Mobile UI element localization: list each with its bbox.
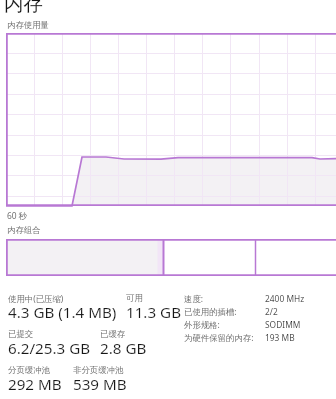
staticText: 使用中(已压缩): [8, 293, 64, 304]
staticText: 60 秒: [7, 210, 28, 221]
staticText: 已提交: [8, 329, 34, 340]
staticText: 非分页缓冲池: [73, 365, 124, 376]
staticText: 内存组合: [7, 225, 41, 236]
staticText: 分页缓冲池: [8, 365, 50, 376]
staticText: 292 MB: [8, 374, 62, 395]
staticText: 193 MB: [265, 332, 295, 343]
staticText: 539 MB: [73, 374, 127, 395]
staticText: 速度:: [184, 293, 204, 304]
staticText: 6.2/25.3 GB: [8, 338, 91, 359]
staticText: 2400 MHz: [265, 293, 305, 304]
staticText: 可用: [126, 293, 143, 304]
button[interactable]: 内存组合: [6, 239, 336, 276]
staticText: 已使用的插槽:: [184, 306, 237, 317]
staticText: SODIMM: [265, 319, 301, 330]
staticText: 11.3 GB: [126, 302, 182, 323]
staticText: 为硬件保留的内存:: [184, 332, 254, 343]
staticText: 外形规格:: [184, 319, 220, 330]
staticText: 内存: [4, 0, 44, 16]
staticText: 内存使用量: [7, 20, 49, 31]
staticText: 2/2: [265, 306, 278, 317]
staticText: 4.3 GB (1.4 MB): [8, 302, 117, 323]
staticText: 已缓存: [100, 329, 126, 340]
staticText: 2.8 GB: [100, 338, 147, 359]
button[interactable]: 内存使用量图表: [6, 33, 336, 206]
